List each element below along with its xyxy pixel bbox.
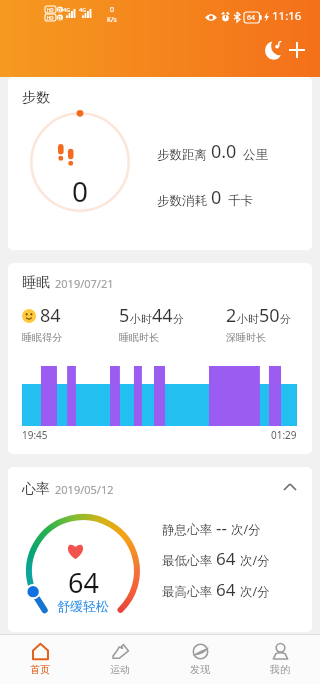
button[interactable]: 我的 (240, 635, 320, 684)
staticText: 5 (119, 303, 130, 328)
button[interactable]: 发现 (160, 635, 240, 684)
staticText: K/s (107, 15, 117, 24)
button[interactable]: Add (283, 36, 311, 64)
staticText: 运动 (110, 663, 130, 676)
staticText: 0 (110, 5, 115, 15)
staticText: 4G (63, 6, 71, 13)
staticText: 公里 (243, 147, 268, 163)
button[interactable]: Sleep mode (259, 36, 287, 64)
staticText: 小时 (237, 312, 259, 326)
staticText: D (58, 15, 62, 21)
staticText: 4G (79, 6, 87, 13)
staticText: 64 (216, 547, 236, 570)
staticText: 发现 (190, 663, 210, 676)
staticText: 小时 (130, 312, 152, 326)
staticText: 心率 (22, 480, 50, 498)
button[interactable]: 首页 (0, 635, 80, 684)
staticText: 步数消耗 (157, 193, 207, 209)
staticText: 步数 (22, 89, 50, 107)
staticText: 50 (259, 303, 280, 328)
staticText: 最低心率 (162, 553, 212, 569)
staticText: 2019/05/12 (55, 482, 114, 497)
staticText: 01:29 (271, 428, 297, 442)
staticText: 我的 (270, 663, 290, 676)
staticText: 2019/07/21 (55, 276, 114, 291)
staticText: 次/分 (240, 552, 270, 569)
staticText: 舒缓轻松 (57, 598, 109, 614)
staticText: 64 (247, 13, 256, 23)
button[interactable]: Collapse (279, 476, 301, 498)
staticText: 深睡时长 (226, 331, 266, 344)
staticText: 最高心率 (162, 584, 212, 600)
button[interactable]: 运动 (80, 635, 160, 684)
staticText: 睡眠时长 (119, 331, 159, 344)
staticText: 次/分 (231, 521, 261, 538)
staticText: 2 (226, 303, 237, 328)
staticText: 分 (280, 312, 291, 326)
staticText: 分 (173, 312, 184, 326)
staticText: D (58, 7, 62, 13)
staticText: 44 (152, 303, 173, 328)
staticText: HD (47, 15, 54, 21)
staticText: 步数距离 (157, 147, 207, 163)
staticText: 19:45 (22, 428, 48, 442)
staticText: 睡眠得分 (22, 331, 62, 344)
staticText: 次/分 (240, 583, 270, 600)
staticText: 千卡 (228, 193, 253, 209)
staticText: -- (216, 516, 227, 539)
staticText: 0.0 (211, 139, 237, 164)
staticText: 11:16 (272, 8, 302, 24)
staticText: HD (47, 7, 54, 13)
staticText: 睡眠 (22, 274, 50, 292)
staticText: 0 (72, 172, 89, 210)
staticText: 0 (211, 185, 222, 210)
staticText: 静息心率 (162, 522, 212, 538)
staticText: 64 (216, 578, 236, 601)
staticText: 首页 (30, 663, 50, 676)
staticText: 64 (68, 564, 99, 601)
staticText: 84 (40, 303, 61, 328)
